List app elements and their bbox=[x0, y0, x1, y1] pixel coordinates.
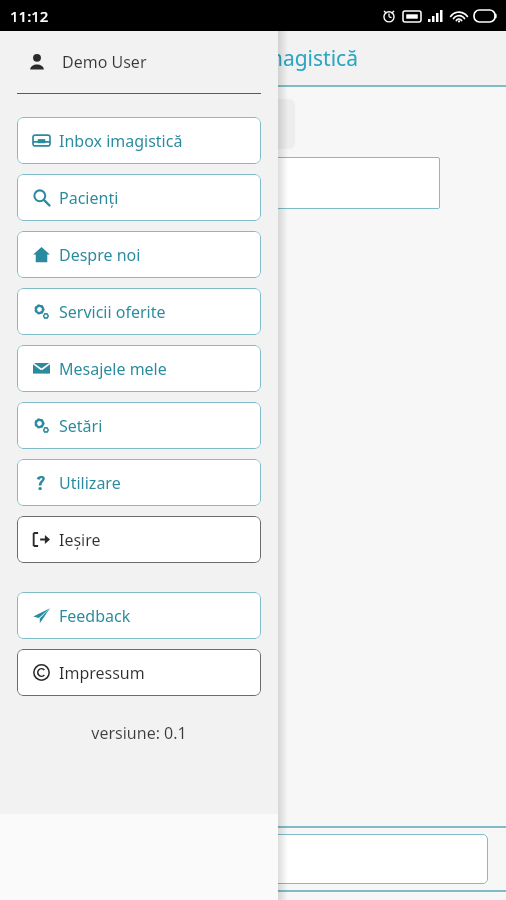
staticText: 11:12 bbox=[10, 6, 49, 26]
staticText: Feedback bbox=[59, 605, 131, 627]
staticText: Setări bbox=[59, 415, 103, 437]
button[interactable]: Ieșire bbox=[17, 516, 261, 563]
button[interactable]: Pacienți bbox=[150, 834, 488, 884]
button[interactable]: Feedback bbox=[17, 592, 261, 639]
button[interactable]: Despre noi bbox=[17, 231, 261, 278]
staticText: Impressum bbox=[59, 662, 145, 684]
button[interactable]: Setări bbox=[17, 402, 261, 449]
staticText: versiune: 0.1 bbox=[0, 722, 278, 744]
button[interactable]: Demo User bbox=[0, 31, 278, 93]
button[interactable]: Servicii oferite bbox=[17, 288, 261, 335]
button[interactable]: Mesajele mele bbox=[17, 345, 261, 392]
button[interactable]: Pacienți bbox=[17, 174, 261, 221]
staticText: Inbox imagistică bbox=[59, 130, 183, 152]
button[interactable]: Impressum bbox=[17, 649, 261, 696]
button[interactable]: Inbox imagistică bbox=[17, 117, 261, 164]
staticText: Demo User bbox=[62, 51, 147, 73]
staticText: Nepreluate bbox=[188, 113, 273, 135]
button[interactable] bbox=[150, 157, 440, 209]
button[interactable]: Utilizare bbox=[17, 459, 261, 506]
staticText: Pacienți bbox=[59, 187, 119, 209]
staticText: Ieșire bbox=[59, 529, 101, 551]
staticText: Servicii oferite bbox=[59, 301, 166, 323]
staticText: Mesajele mele bbox=[59, 358, 167, 380]
staticText: Utilizare bbox=[59, 472, 121, 494]
staticText: Inbox imagistică bbox=[196, 44, 358, 73]
button[interactable]: Nepreluate bbox=[166, 99, 295, 149]
staticText: Despre noi bbox=[59, 244, 141, 266]
